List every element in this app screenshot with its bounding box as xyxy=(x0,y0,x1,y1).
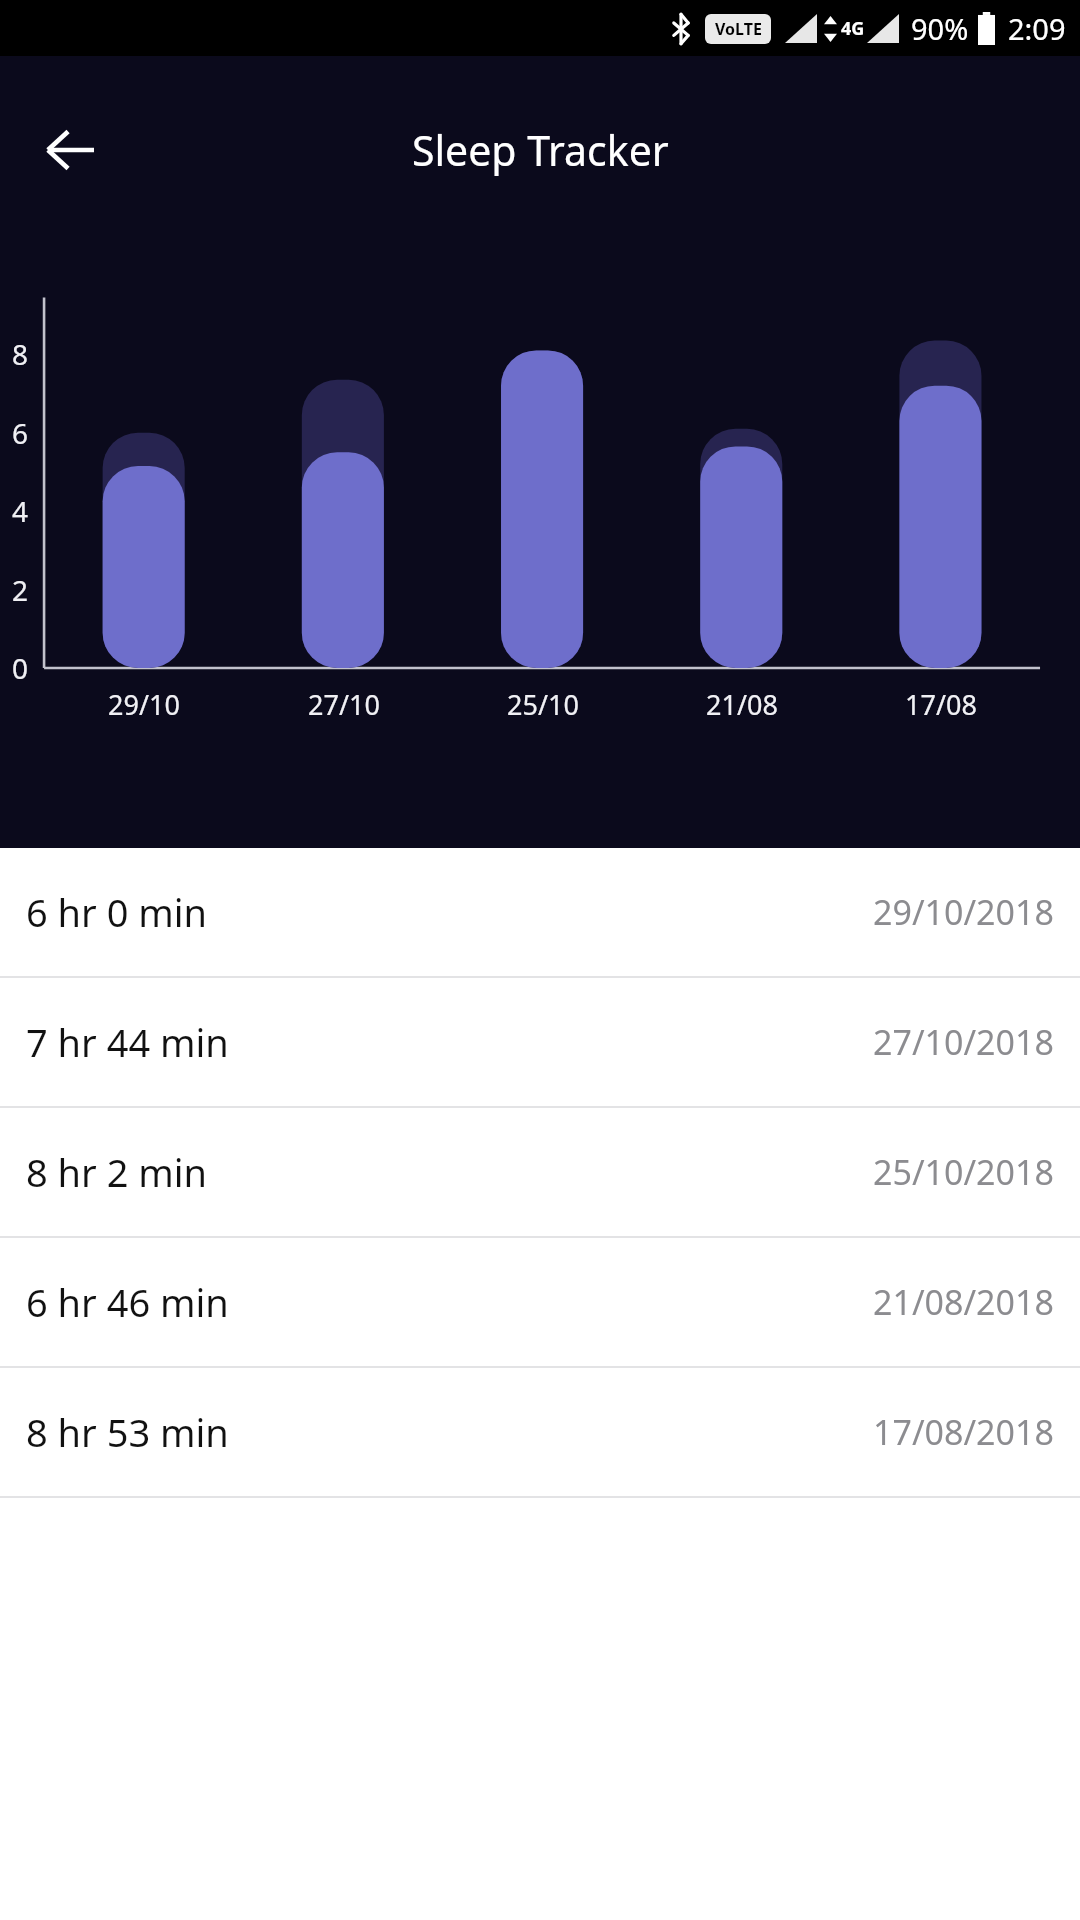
button[interactable]: 6 hr 0 min xyxy=(0,848,1080,976)
button[interactable]: 6 hr 46 min xyxy=(0,1238,1080,1366)
staticText: 27/10 xyxy=(308,686,380,723)
staticText: 8 xyxy=(12,335,29,373)
staticText: Sleep Tracker xyxy=(412,122,669,178)
button[interactable]: 8 hr 2 min xyxy=(0,1108,1080,1236)
button[interactable]: 8 hr 53 min xyxy=(0,1368,1080,1496)
staticText: 0 xyxy=(12,649,29,687)
staticText: 6 hr 46 min xyxy=(26,1276,229,1328)
button[interactable]: Back xyxy=(28,108,112,192)
staticText: VoLTE xyxy=(715,18,762,40)
staticText: 17/08/2018 xyxy=(873,1409,1054,1455)
staticText: 2:09 xyxy=(1008,9,1066,48)
staticText: 21/08 xyxy=(706,686,778,723)
staticText: 21/08/2018 xyxy=(873,1279,1054,1325)
staticText: 6 xyxy=(12,414,29,452)
staticText: 29/10 xyxy=(108,686,180,723)
staticText: 90% xyxy=(911,9,969,48)
staticText: 2 xyxy=(12,571,29,609)
staticText: 8 hr 2 min xyxy=(26,1146,208,1198)
button[interactable]: 7 hr 44 min xyxy=(0,978,1080,1106)
staticText: 25/10 xyxy=(507,686,579,723)
staticText: 7 hr 44 min xyxy=(26,1016,229,1068)
staticText: 27/10/2018 xyxy=(873,1019,1054,1065)
staticText: 25/10/2018 xyxy=(873,1149,1054,1195)
staticText: 17/08 xyxy=(905,686,977,723)
staticText: 29/10/2018 xyxy=(873,889,1054,935)
staticText: 4G xyxy=(841,16,865,41)
staticText: 4 xyxy=(12,492,29,530)
staticText: 8 hr 53 min xyxy=(26,1406,229,1458)
staticText: 6 hr 0 min xyxy=(26,886,208,938)
